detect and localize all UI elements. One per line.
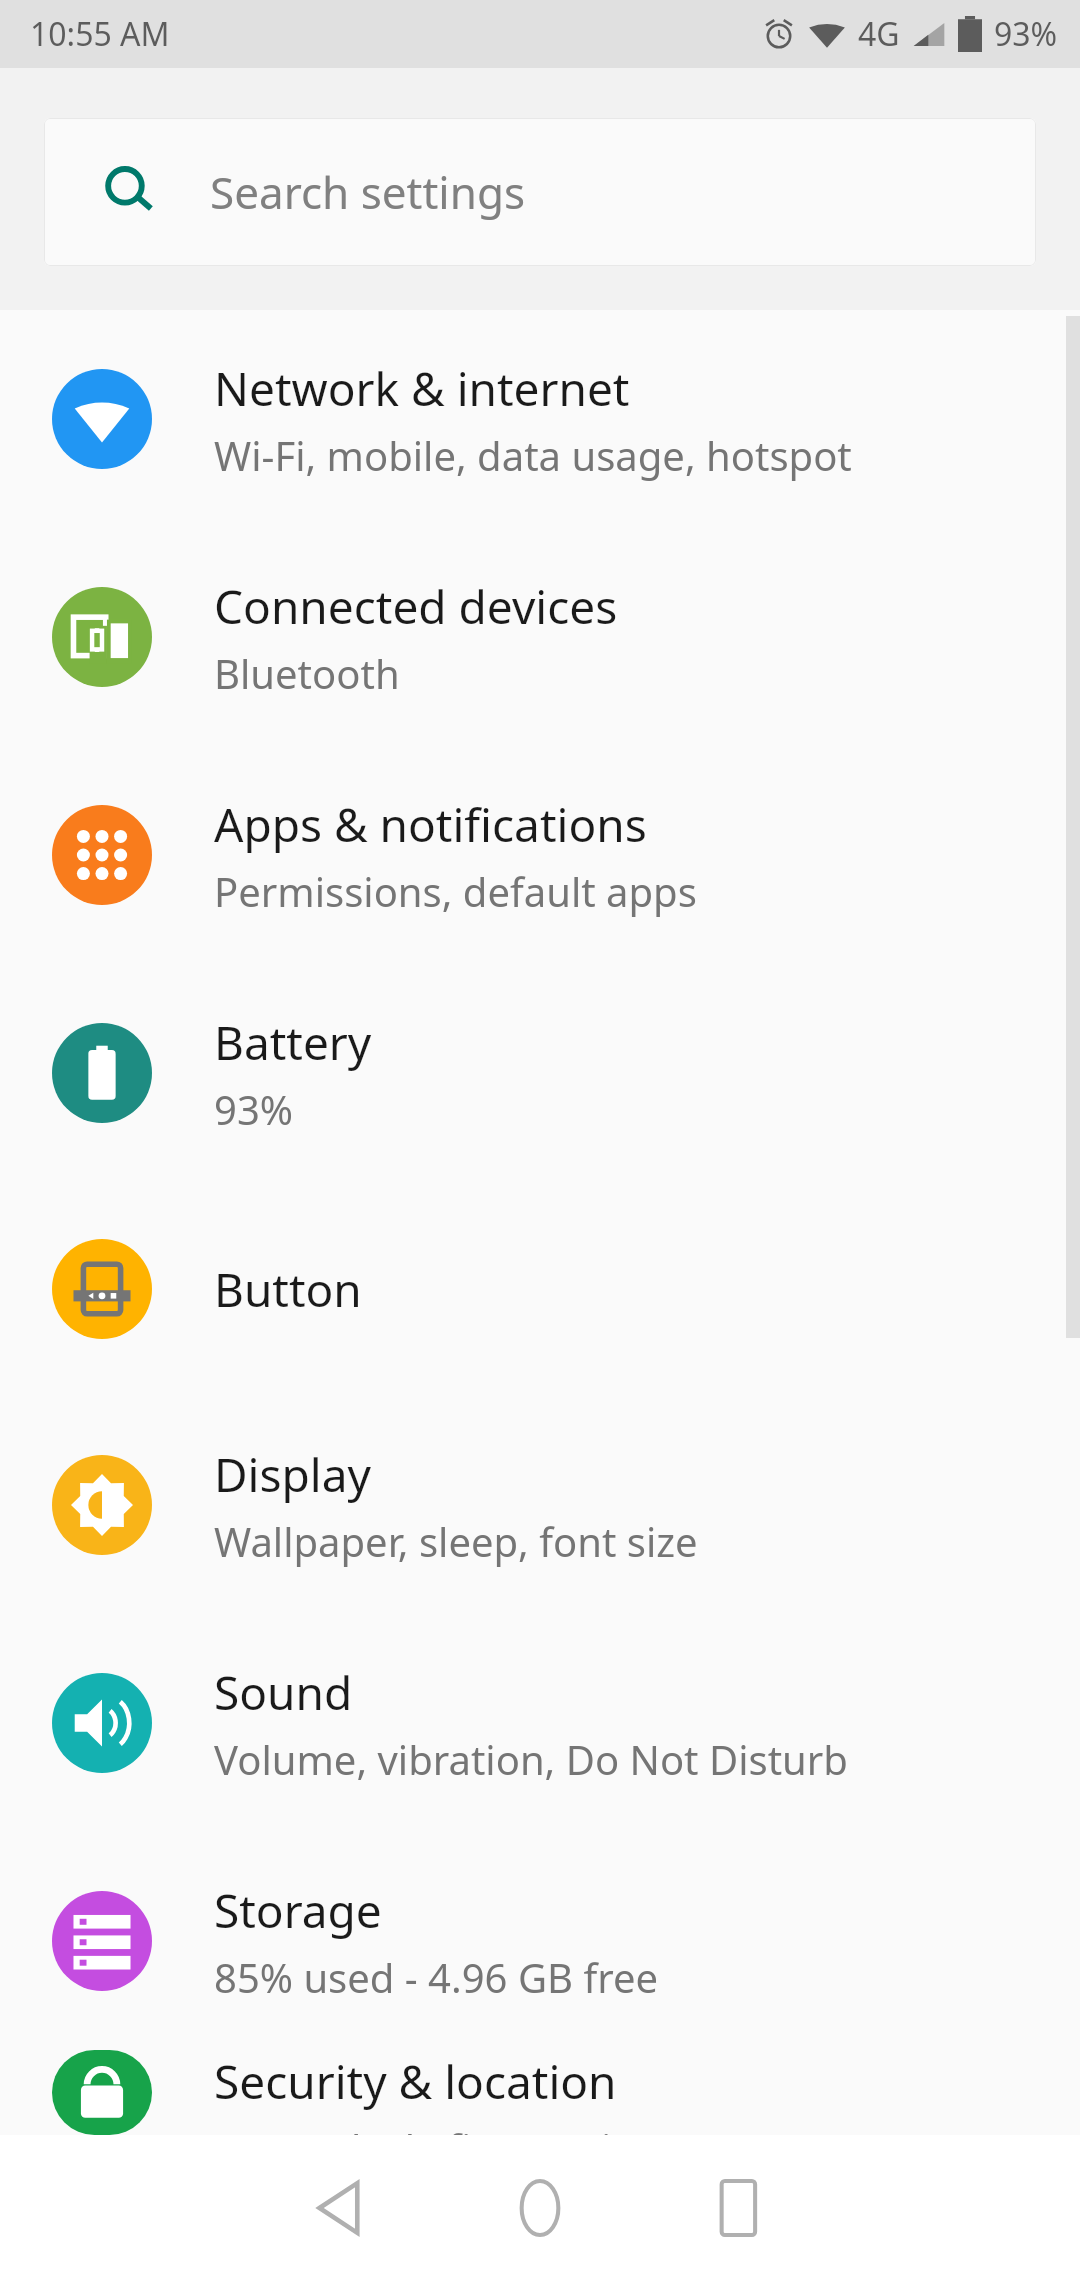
staticText: Battery [214,1011,372,1074]
staticText: Wallpaper, sleep, font size [214,1514,698,1568]
button[interactable]: Network & internet [0,310,1080,528]
button[interactable]: Search settings [44,118,1036,266]
staticText: Button [214,1258,362,1321]
staticText: Storage [214,1879,382,1942]
button[interactable]: Recent apps [640,2135,840,2280]
staticText: Search settings [210,162,526,222]
staticText: Sound [214,1661,353,1724]
staticText: Display [214,1443,371,1506]
staticText: Volume, vibration, Do Not Disturb [214,1732,848,1786]
button[interactable]: Battery [0,964,1080,1182]
button[interactable]: Apps & notifications [0,746,1080,964]
button[interactable]: Back [240,2135,440,2280]
staticText: Connected devices [214,575,618,638]
staticText: Network & internet [214,357,630,420]
staticText: Screen lock, fingerprint [214,2121,651,2135]
button[interactable]: Button [0,1182,1080,1396]
staticText: Apps & notifications [214,793,647,856]
button[interactable]: Home [440,2135,640,2280]
staticText: Bluetooth [214,646,400,700]
button[interactable]: Storage [0,1832,1080,2050]
button[interactable]: Security & location [0,2050,1080,2135]
button[interactable]: Connected devices [0,528,1080,746]
button[interactable]: Sound [0,1614,1080,1832]
staticText: Security & location [214,2050,617,2113]
staticText: 10:55 AM [30,12,170,56]
staticText: 4G [858,12,900,56]
staticText: Permissions, default apps [214,864,697,918]
button[interactable]: Display [0,1396,1080,1614]
staticText: 85% used - 4.96 GB free [214,1950,658,2004]
staticText: 93% [214,1082,293,1136]
staticText: Wi-Fi, mobile, data usage, hotspot [214,428,852,482]
staticText: 93% [994,12,1058,56]
